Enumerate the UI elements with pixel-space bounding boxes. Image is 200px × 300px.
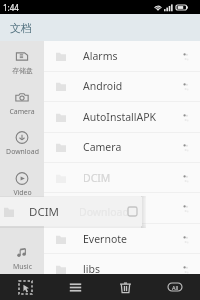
button[interactable]: Alarms <box>44 41 200 71</box>
staticText: Alarms <box>83 49 118 63</box>
staticText: DCIM <box>29 204 59 220</box>
button[interactable]: Music <box>0 247 44 274</box>
staticText: All <box>172 284 179 291</box>
button[interactable]: 存储盘 <box>0 51 44 78</box>
staticText: 存储盘 <box>12 66 33 75</box>
staticText: libs <box>83 262 100 276</box>
staticText: DCIM <box>83 171 111 185</box>
staticText: AutoInstallAPK <box>83 110 157 124</box>
button[interactable]: Sort <box>50 274 100 300</box>
staticText: Video <box>13 188 32 197</box>
button[interactable]: Android <box>44 71 200 101</box>
button[interactable]: AutoInstallAPK <box>44 102 200 132</box>
button[interactable]: Video <box>0 173 44 200</box>
staticText: Download <box>6 147 39 156</box>
staticText: 1:44 <box>3 2 19 13</box>
staticText: Evernote <box>83 232 127 246</box>
staticText: Camera <box>83 140 122 154</box>
button[interactable]: All <box>150 274 200 300</box>
staticText: Music <box>13 262 32 271</box>
button[interactable]: Camera <box>0 92 44 119</box>
button[interactable]: Download <box>44 193 200 223</box>
button[interactable]: Download <box>0 132 44 159</box>
button[interactable]: 文档 <box>0 14 200 41</box>
button[interactable]: Camera <box>44 132 200 162</box>
button[interactable]: DCIM <box>44 163 200 193</box>
button[interactable]: Delete <box>100 274 150 300</box>
button[interactable]: libs <box>44 254 200 284</box>
button[interactable]: Evernote <box>44 224 200 254</box>
button[interactable]: Select <box>0 274 50 300</box>
staticText: Camera <box>9 107 35 116</box>
staticText: 文档 <box>10 21 32 35</box>
staticText: Download <box>83 201 133 215</box>
staticText: Download <box>79 205 129 219</box>
button[interactable]: Download <box>0 197 142 226</box>
staticText: Android <box>83 79 123 93</box>
